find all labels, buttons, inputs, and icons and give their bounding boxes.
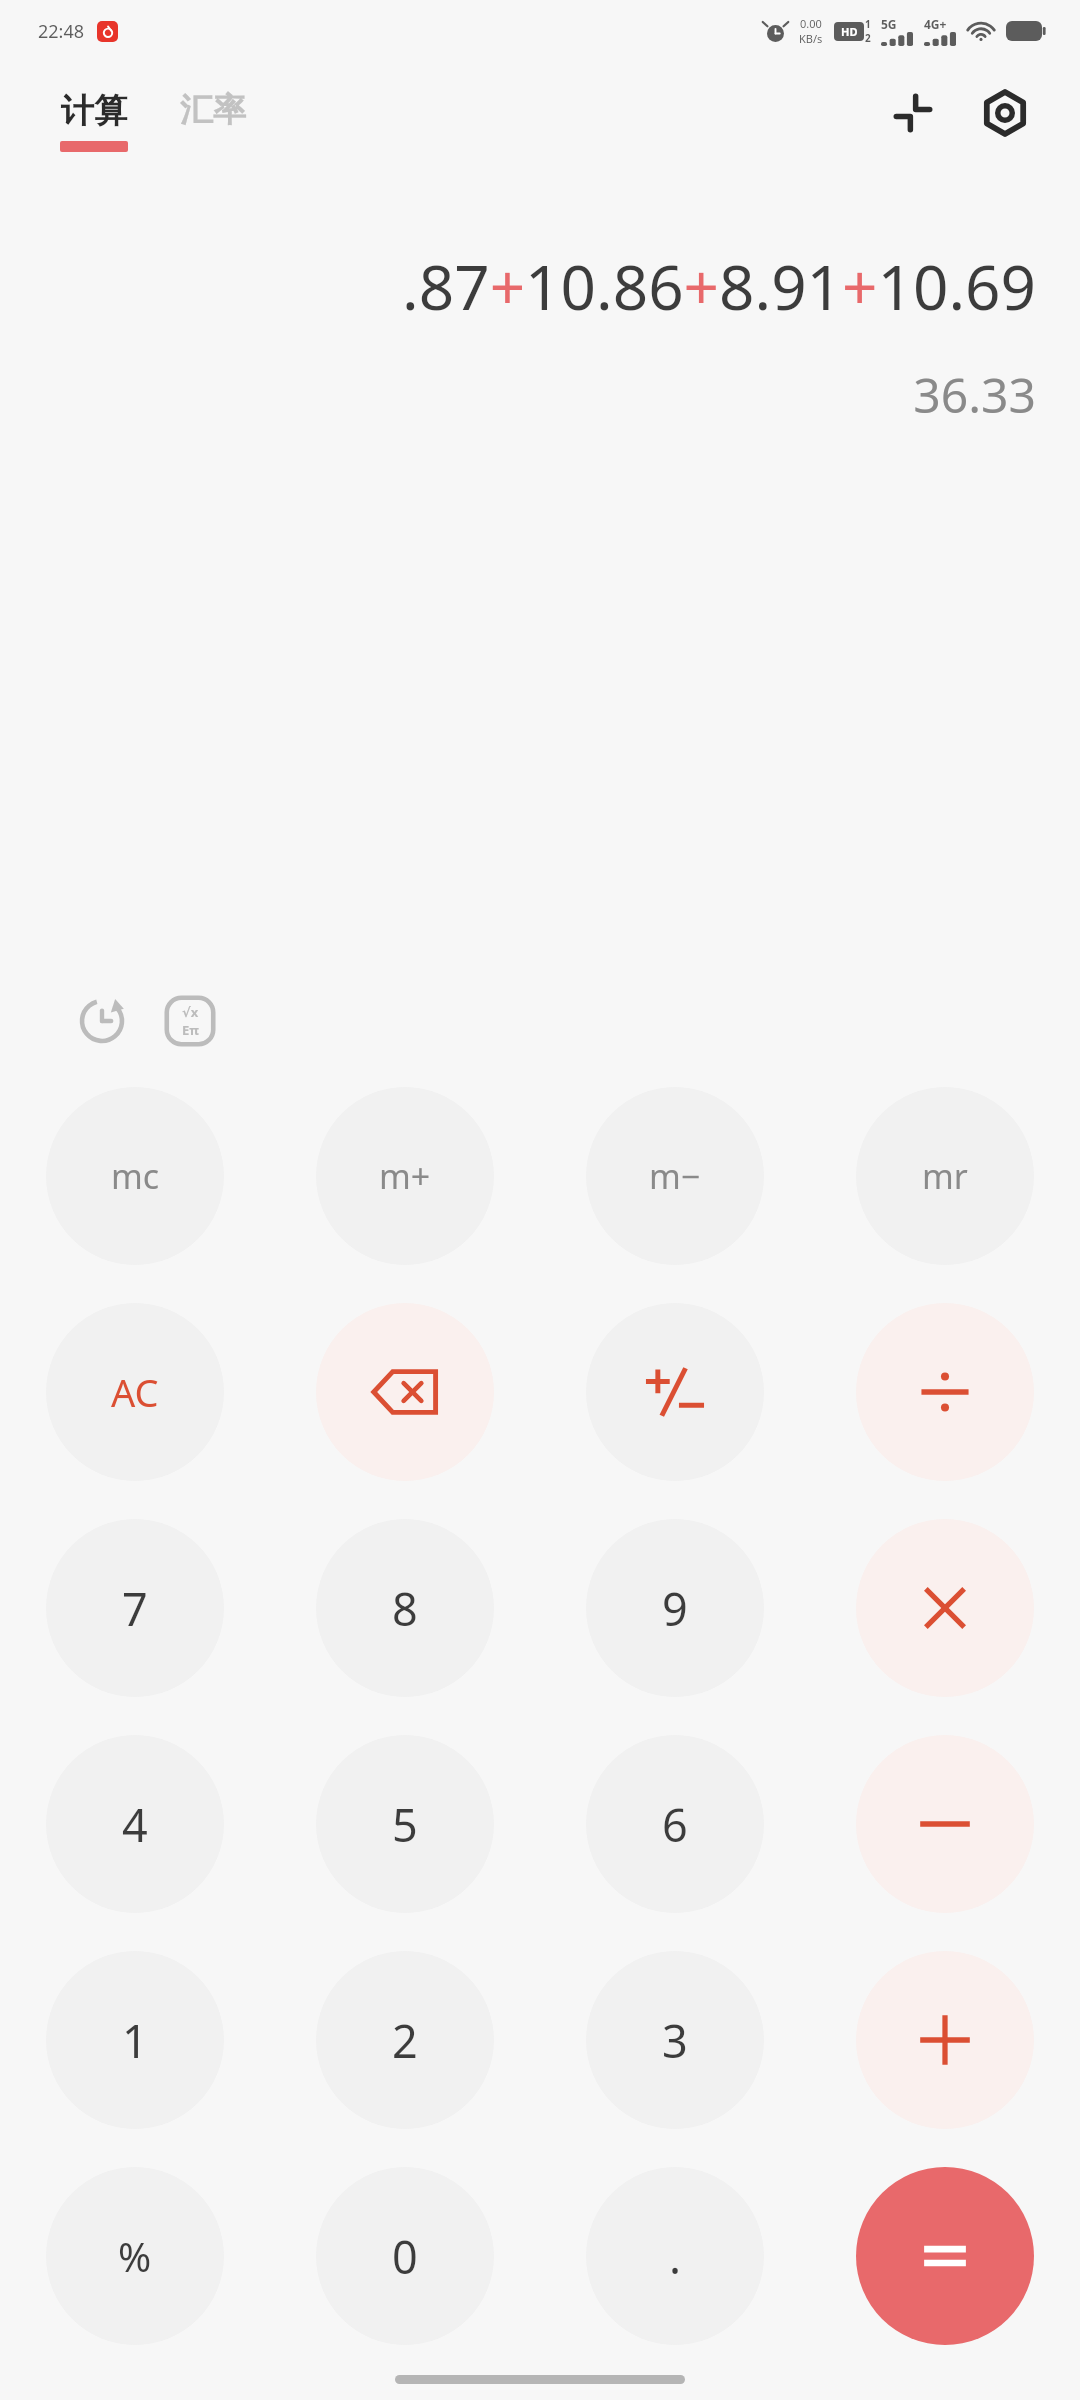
staticText: 22:48	[38, 19, 85, 44]
staticText: .	[669, 2226, 682, 2287]
button[interactable]: Settings	[972, 80, 1038, 146]
button[interactable]: 汇率	[176, 85, 250, 135]
staticText: 5G	[881, 16, 897, 32]
button[interactable]: .	[586, 2167, 764, 2345]
staticText: 6	[662, 1794, 688, 1855]
button[interactable]: History	[66, 985, 138, 1057]
staticText: 1	[122, 2010, 148, 2071]
staticText: m+	[379, 1153, 431, 1199]
button[interactable]: AC	[46, 1303, 224, 1481]
button[interactable]: mr	[856, 1087, 1034, 1265]
button[interactable]: mc	[46, 1087, 224, 1265]
staticText: 5	[392, 1794, 418, 1855]
button[interactable]: Toggle sign	[586, 1303, 764, 1481]
button[interactable]: %	[46, 2167, 224, 2345]
button[interactable]: Equals	[856, 2167, 1034, 2345]
staticText: HD	[841, 24, 858, 39]
button[interactable]: Multiply	[856, 1519, 1034, 1697]
button[interactable]: 5	[316, 1735, 494, 1913]
button[interactable]: Plus	[856, 1951, 1034, 2129]
staticText: 2	[865, 31, 871, 45]
button[interactable]: Backspace	[316, 1303, 494, 1481]
button[interactable]: 3	[586, 1951, 764, 2129]
button[interactable]: 8	[316, 1519, 494, 1697]
button[interactable]: 9	[586, 1519, 764, 1697]
staticText: mr	[922, 1153, 968, 1199]
staticText: .87+10.86+8.91+10.69	[44, 244, 1036, 328]
button[interactable]: Collapse	[880, 80, 946, 146]
button[interactable]: 4	[46, 1735, 224, 1913]
staticText: 汇率	[180, 89, 246, 131]
staticText: 36.33	[44, 362, 1036, 427]
button[interactable]: Divide	[856, 1303, 1034, 1481]
staticText: 1	[865, 17, 871, 31]
button[interactable]: 7	[46, 1519, 224, 1697]
staticText: 4G+	[924, 16, 947, 32]
staticText: mc	[111, 1153, 160, 1199]
button[interactable]: m−	[586, 1087, 764, 1265]
button[interactable]: 2	[316, 1951, 494, 2129]
staticText: 7	[122, 1578, 148, 1639]
staticText: 3	[662, 2010, 688, 2071]
button[interactable]: Scientific mode	[154, 985, 226, 1057]
button[interactable]: 6	[586, 1735, 764, 1913]
staticText: 0	[392, 2226, 418, 2287]
button[interactable]: Minus	[856, 1735, 1034, 1913]
button[interactable]: 1	[46, 1951, 224, 2129]
staticText: √x	[182, 1003, 199, 1021]
staticText: AC	[111, 1366, 159, 1418]
staticText: %	[118, 2229, 152, 2283]
staticText: Eπ	[182, 1021, 199, 1039]
staticText: KB/s	[799, 31, 823, 46]
staticText: 4	[122, 1794, 148, 1855]
staticText: 8	[392, 1578, 418, 1639]
staticText: 0.00	[800, 16, 822, 31]
button[interactable]: m+	[316, 1087, 494, 1265]
staticText: 2	[392, 2010, 418, 2071]
button[interactable]: 0	[316, 2167, 494, 2345]
staticText: 计算	[61, 90, 127, 132]
staticText: m−	[649, 1153, 701, 1199]
staticText: 9	[662, 1578, 688, 1639]
button[interactable]: 计算	[56, 86, 132, 156]
